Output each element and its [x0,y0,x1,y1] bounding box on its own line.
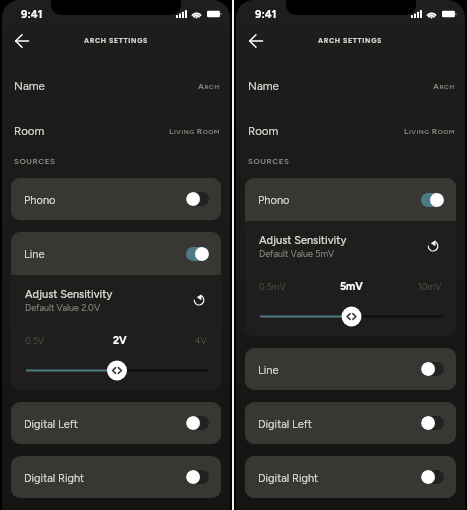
staticText: Line [258,364,279,377]
button[interactable]: Name [236,76,465,96]
staticText: Room [248,124,279,138]
button[interactable]: Back [10,29,34,53]
button[interactable]: Sensitivity slider [11,360,221,381]
staticText: 0.5mV [259,281,286,292]
staticText: Phono [24,194,56,207]
button[interactable]: Room [2,121,230,141]
staticText: Line [24,248,45,261]
button[interactable]: Switch off [421,362,444,376]
staticText: Name [14,79,45,93]
button[interactable]: Name [2,76,230,96]
staticText: LIVING ROOM [169,126,220,136]
button[interactable]: Phono [245,178,456,221]
button[interactable]: Switch on [186,247,209,261]
staticText: 0.5V [25,335,45,346]
staticText: ARCH SETTINGS [318,36,383,44]
staticText: 10mV [418,281,442,292]
staticText: ARCH [198,81,220,91]
staticText: SOURCES [248,156,290,166]
button[interactable]: Back [244,29,268,53]
staticText: Default Value 2.0V [25,302,101,313]
staticText: Default Value 5mV [259,248,335,259]
staticText: Phono [258,194,290,207]
button[interactable]: Digital Left [245,402,456,444]
staticText: ARCH [433,81,455,91]
staticText: Digital Right [24,472,85,485]
staticText: Digital Right [258,472,319,485]
button[interactable]: Switch off [186,192,209,206]
button[interactable]: Phono [11,178,221,220]
button[interactable]: Digital Right [245,456,456,498]
button[interactable]: Reset to default [423,235,443,255]
staticText: ARCH SETTINGS [84,36,149,44]
staticText: Digital Left [258,418,312,431]
staticText: 4V [195,335,207,346]
button[interactable]: Room [236,121,465,141]
button[interactable]: Sensitivity slider [245,306,456,327]
button[interactable]: Reset to default [189,289,209,309]
button[interactable]: Digital Right [11,456,221,498]
staticText: 9:41 [21,8,43,21]
staticText: SOURCES [14,156,56,166]
staticText: Name [248,79,279,93]
staticText: 2V [113,334,127,347]
button[interactable]: Switch off [421,416,444,430]
staticText: 9:41 [255,8,277,21]
staticText: Digital Left [24,418,78,431]
button[interactable]: Switch off [186,470,209,484]
staticText: Room [14,124,45,138]
button[interactable]: Switch off [186,416,209,430]
staticText: Adjust Sensitivity [25,288,113,301]
staticText: 5mV [340,280,363,293]
button[interactable]: Digital Left [11,402,221,444]
button[interactable]: Switch on [421,193,444,207]
button[interactable]: Line [245,348,456,390]
staticText: LIVING ROOM [404,126,455,136]
button[interactable]: Line [11,232,221,275]
staticText: Adjust Sensitivity [259,234,347,247]
button[interactable]: Switch off [421,470,444,484]
